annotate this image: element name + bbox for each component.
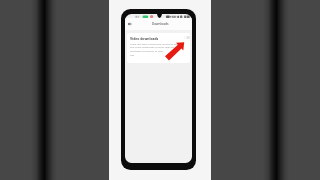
staticText: Video downloads (130, 36, 159, 41)
button[interactable]: Video downloads toggle (184, 36, 190, 39)
staticText: Allow this app to download content to th… (130, 42, 179, 57)
button[interactable]: Video downloads (127, 33, 190, 63)
staticText: Downloads (152, 22, 169, 26)
button[interactable]: Back (126, 20, 134, 28)
